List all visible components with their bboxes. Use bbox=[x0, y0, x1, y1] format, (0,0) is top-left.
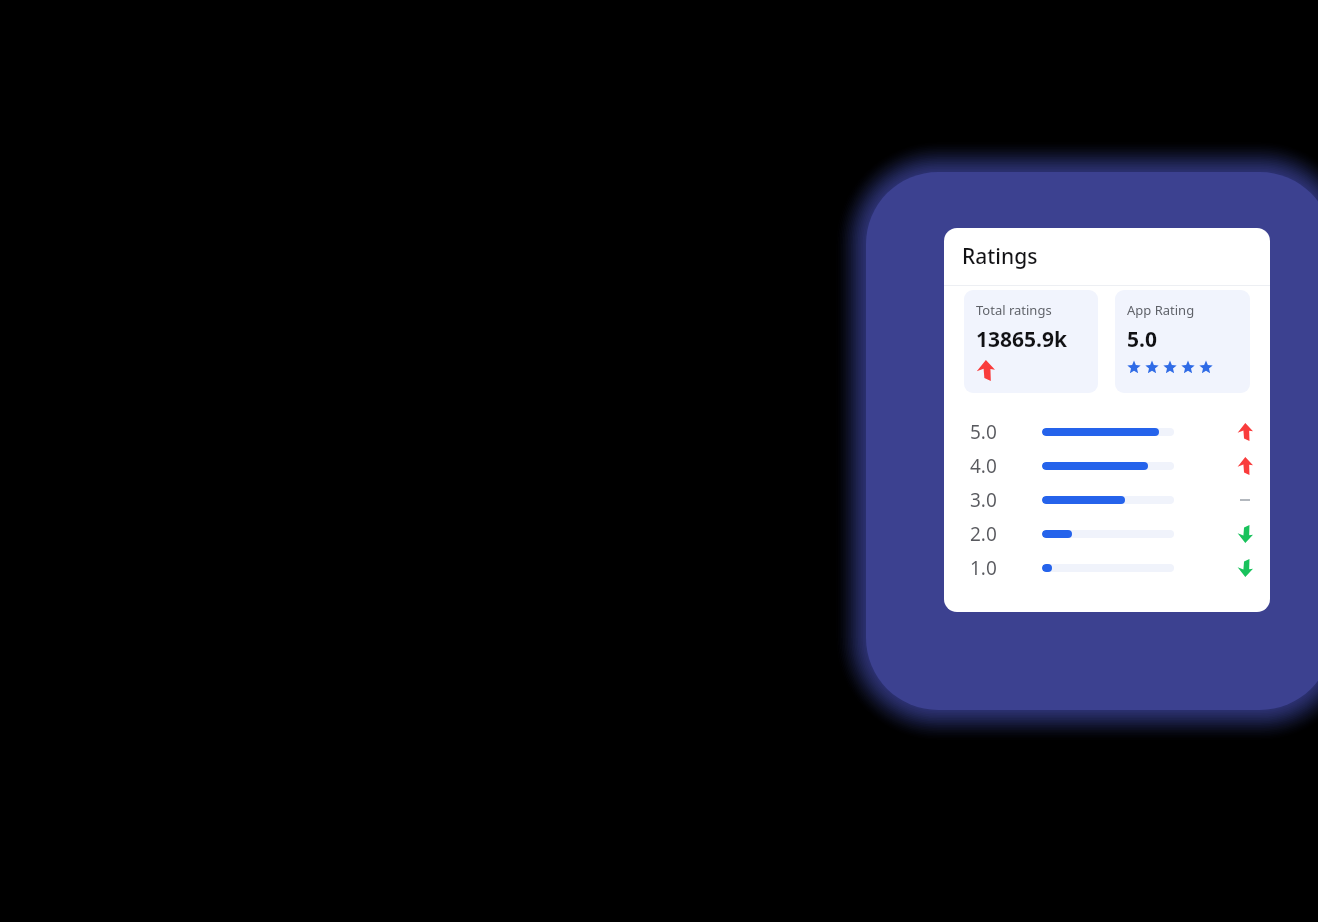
other: Trending up bbox=[1237, 423, 1253, 441]
other: Trending down bbox=[1237, 559, 1253, 577]
button[interactable]: 2.0 bbox=[944, 517, 1270, 551]
staticText: 1.0 bbox=[970, 555, 997, 581]
staticText: 4.0 bbox=[970, 453, 997, 479]
button[interactable]: 4.0 bbox=[944, 449, 1270, 483]
other: No change bbox=[1240, 495, 1250, 505]
staticText: 3.0 bbox=[970, 487, 997, 513]
button[interactable]: Total ratings bbox=[964, 290, 1098, 393]
button[interactable]: App Rating bbox=[1115, 290, 1250, 393]
staticText: App Rating bbox=[1127, 301, 1195, 319]
button[interactable]: 5.0 bbox=[944, 415, 1270, 449]
staticText: 5.0 bbox=[1127, 325, 1157, 354]
button[interactable]: 3.0 bbox=[944, 483, 1270, 517]
staticText: 2.0 bbox=[970, 521, 997, 547]
other: Trending up bbox=[1237, 457, 1253, 475]
staticText: Total ratings bbox=[976, 301, 1052, 319]
staticText: 13865.9k bbox=[976, 325, 1067, 354]
staticText: 5.0 bbox=[970, 419, 997, 445]
button[interactable]: 1.0 bbox=[944, 551, 1270, 585]
other: Trending up bbox=[976, 360, 995, 381]
other: Trending down bbox=[1237, 525, 1253, 543]
staticText: Ratings bbox=[962, 242, 1038, 271]
